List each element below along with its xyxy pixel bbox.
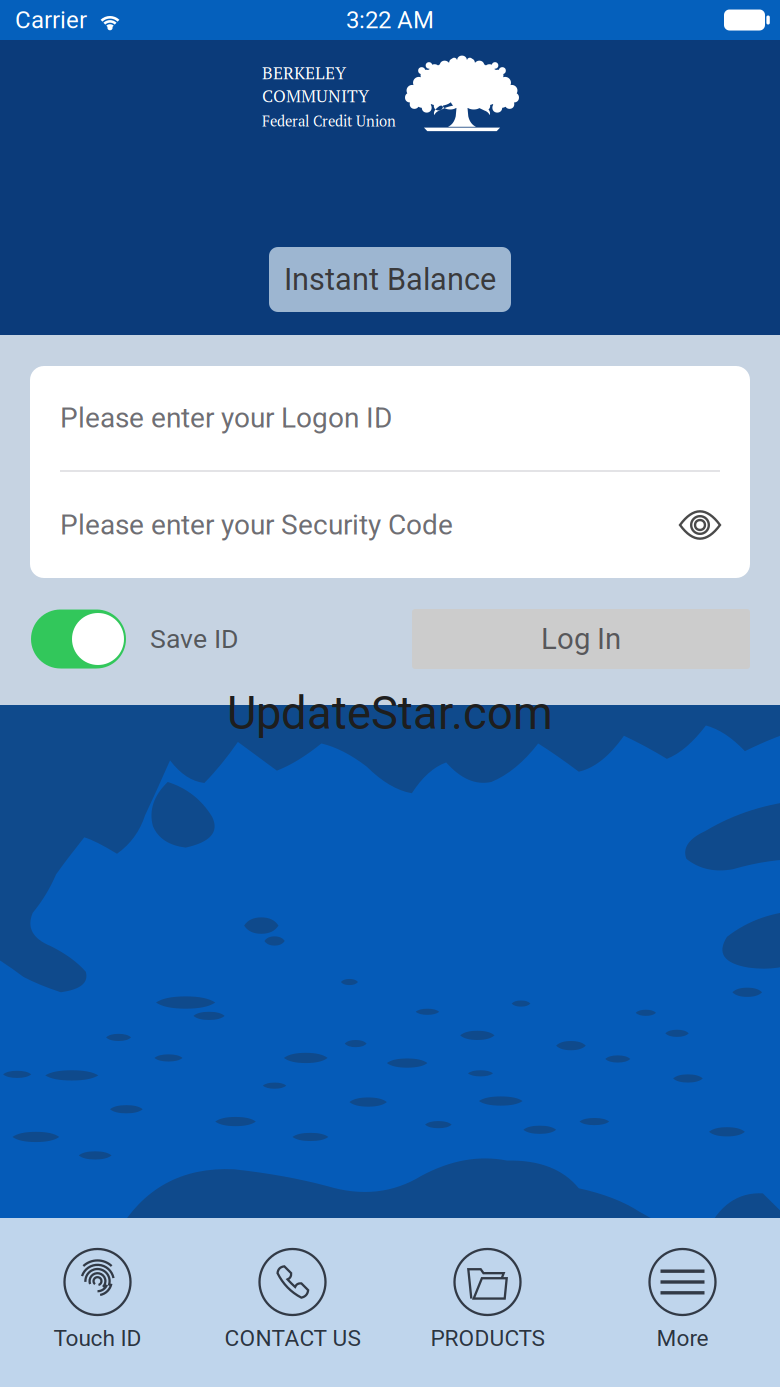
staticText: COMMUNITY — [262, 84, 369, 107]
staticText: Carrier — [15, 6, 87, 34]
staticText: UpdateStar.com — [227, 687, 553, 740]
staticText: Log In — [541, 622, 621, 656]
staticText: Instant Balance — [284, 261, 496, 297]
staticText: Touch ID — [53, 1325, 141, 1352]
button[interactable]: Show security code — [680, 512, 720, 538]
staticText: Please enter your Security Code — [60, 509, 453, 541]
staticText: CONTACT US — [224, 1325, 360, 1352]
staticText: Save ID — [150, 623, 239, 655]
staticText: BERKELEY — [262, 61, 346, 84]
button[interactable]: PRODUCTS — [390, 1249, 585, 1352]
button[interactable]: Instant Balance — [269, 247, 511, 312]
staticText: Please enter your Logon ID — [60, 402, 392, 434]
staticText: More — [656, 1325, 708, 1352]
button[interactable]: Log In — [412, 609, 750, 669]
staticText: PRODUCTS — [430, 1325, 544, 1352]
button[interactable]: CONTACT US — [195, 1249, 390, 1352]
button[interactable]: More — [585, 1249, 780, 1352]
button[interactable]: Touch ID — [0, 1249, 195, 1352]
staticText: Federal Credit Union — [262, 111, 396, 131]
button[interactable]: Save ID — [31, 609, 126, 668]
staticText: 3:22 AM — [346, 6, 434, 34]
